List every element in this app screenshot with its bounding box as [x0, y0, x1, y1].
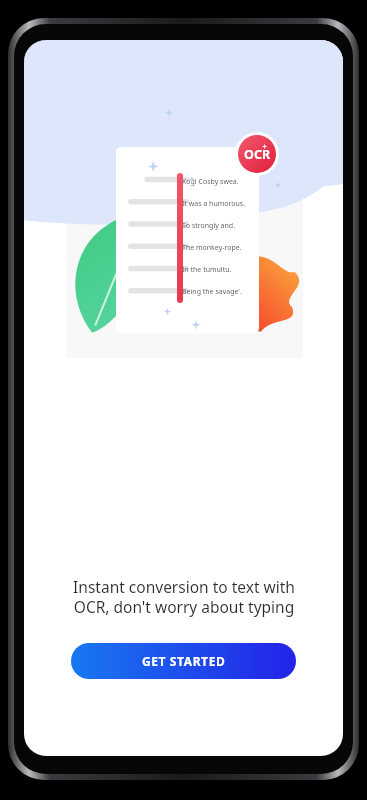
staticText: Instant conversion to text with OCR, don… — [73, 576, 295, 617]
staticText: Kogi Cosby swea. — [182, 177, 239, 187]
other: OCR — [238, 135, 276, 173]
staticText: So strongly and. — [182, 221, 236, 231]
staticText: The monkey-rope. — [182, 243, 242, 253]
staticText: GET STARTED — [142, 653, 226, 669]
staticText: In the tumultu. — [182, 265, 232, 275]
staticText: Being the savage'. — [182, 287, 242, 297]
staticText: OCR — [244, 146, 271, 163]
staticText: It was a humorous. — [182, 199, 246, 209]
button[interactable]: GET STARTED — [71, 643, 296, 679]
